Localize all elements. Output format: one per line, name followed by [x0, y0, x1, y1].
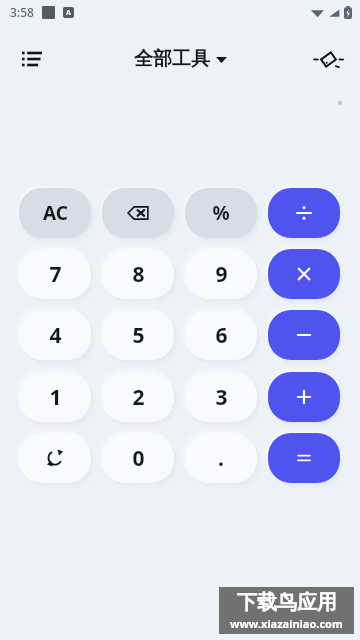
staticText: A	[66, 8, 71, 18]
button[interactable]: .	[185, 433, 257, 483]
button[interactable]: Rotate screen	[308, 39, 348, 79]
staticText: 0	[132, 444, 145, 473]
staticText: 3:58	[10, 4, 34, 20]
button[interactable]: 全部工具	[134, 47, 227, 71]
staticText: 5	[132, 321, 145, 350]
staticText: www.xiazainiao.com	[230, 616, 343, 631]
button[interactable]: 3	[185, 372, 257, 422]
staticText: 4	[49, 321, 62, 350]
button[interactable]: 1	[19, 372, 91, 422]
button[interactable]: Menu list	[12, 39, 52, 79]
button[interactable]: Backspace	[102, 188, 174, 238]
button[interactable]: Swap	[19, 433, 91, 483]
staticText: 6	[215, 321, 228, 350]
button[interactable]: 9	[185, 249, 257, 299]
staticText: %	[212, 200, 230, 226]
staticText: 1	[49, 383, 62, 412]
button[interactable]: 8	[102, 249, 174, 299]
button[interactable]: AC	[19, 188, 91, 238]
button[interactable]: 0	[102, 433, 174, 483]
button[interactable]: %	[185, 188, 257, 238]
button[interactable]: Equals	[268, 433, 340, 483]
button[interactable]: Divide	[268, 188, 340, 238]
staticText: 9	[215, 260, 228, 289]
staticText: 下载鸟应用	[237, 590, 337, 615]
button[interactable]: 4	[19, 310, 91, 360]
staticText: 7	[49, 260, 62, 289]
button[interactable]: Multiply	[268, 249, 340, 299]
button[interactable]: Minus	[268, 310, 340, 360]
staticText: .	[218, 444, 224, 473]
staticText: 2	[132, 383, 145, 412]
staticText: AC	[43, 200, 68, 226]
button[interactable]: 6	[185, 310, 257, 360]
button[interactable]: 7	[19, 249, 91, 299]
button[interactable]: 2	[102, 372, 174, 422]
staticText: 全部工具	[134, 47, 210, 71]
button[interactable]: Plus	[268, 372, 340, 422]
button[interactable]: 5	[102, 310, 174, 360]
staticText: 3	[215, 383, 228, 412]
staticText: 8	[132, 260, 145, 289]
